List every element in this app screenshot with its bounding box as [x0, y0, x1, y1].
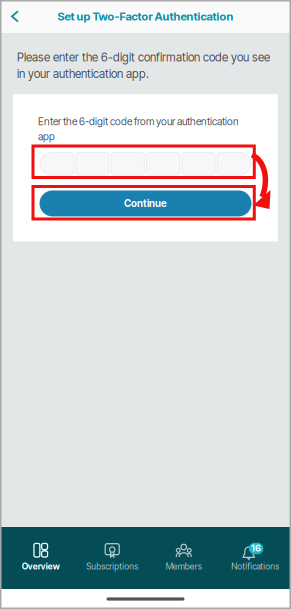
button[interactable]: Members: [148, 527, 219, 589]
staticText: Enter the 6-digit code from your authent…: [38, 114, 239, 144]
staticText: Notifications: [231, 561, 279, 571]
button[interactable]: Subscriptions: [76, 527, 148, 589]
button[interactable]: Continue: [39, 190, 251, 216]
staticText: Set up Two-Factor Authentication: [57, 10, 233, 23]
staticText: Members: [166, 561, 202, 571]
button[interactable]: Overview: [5, 527, 76, 589]
staticText: Subscriptions: [86, 561, 138, 571]
button[interactable]: Back: [0, 0, 30, 33]
staticText: Continue: [124, 197, 167, 209]
staticText: Overview: [22, 561, 60, 571]
button[interactable]: 16: [219, 527, 291, 589]
staticText: Please enter the 6-digit confirmation co…: [17, 49, 270, 82]
staticText: 16: [251, 543, 261, 554]
